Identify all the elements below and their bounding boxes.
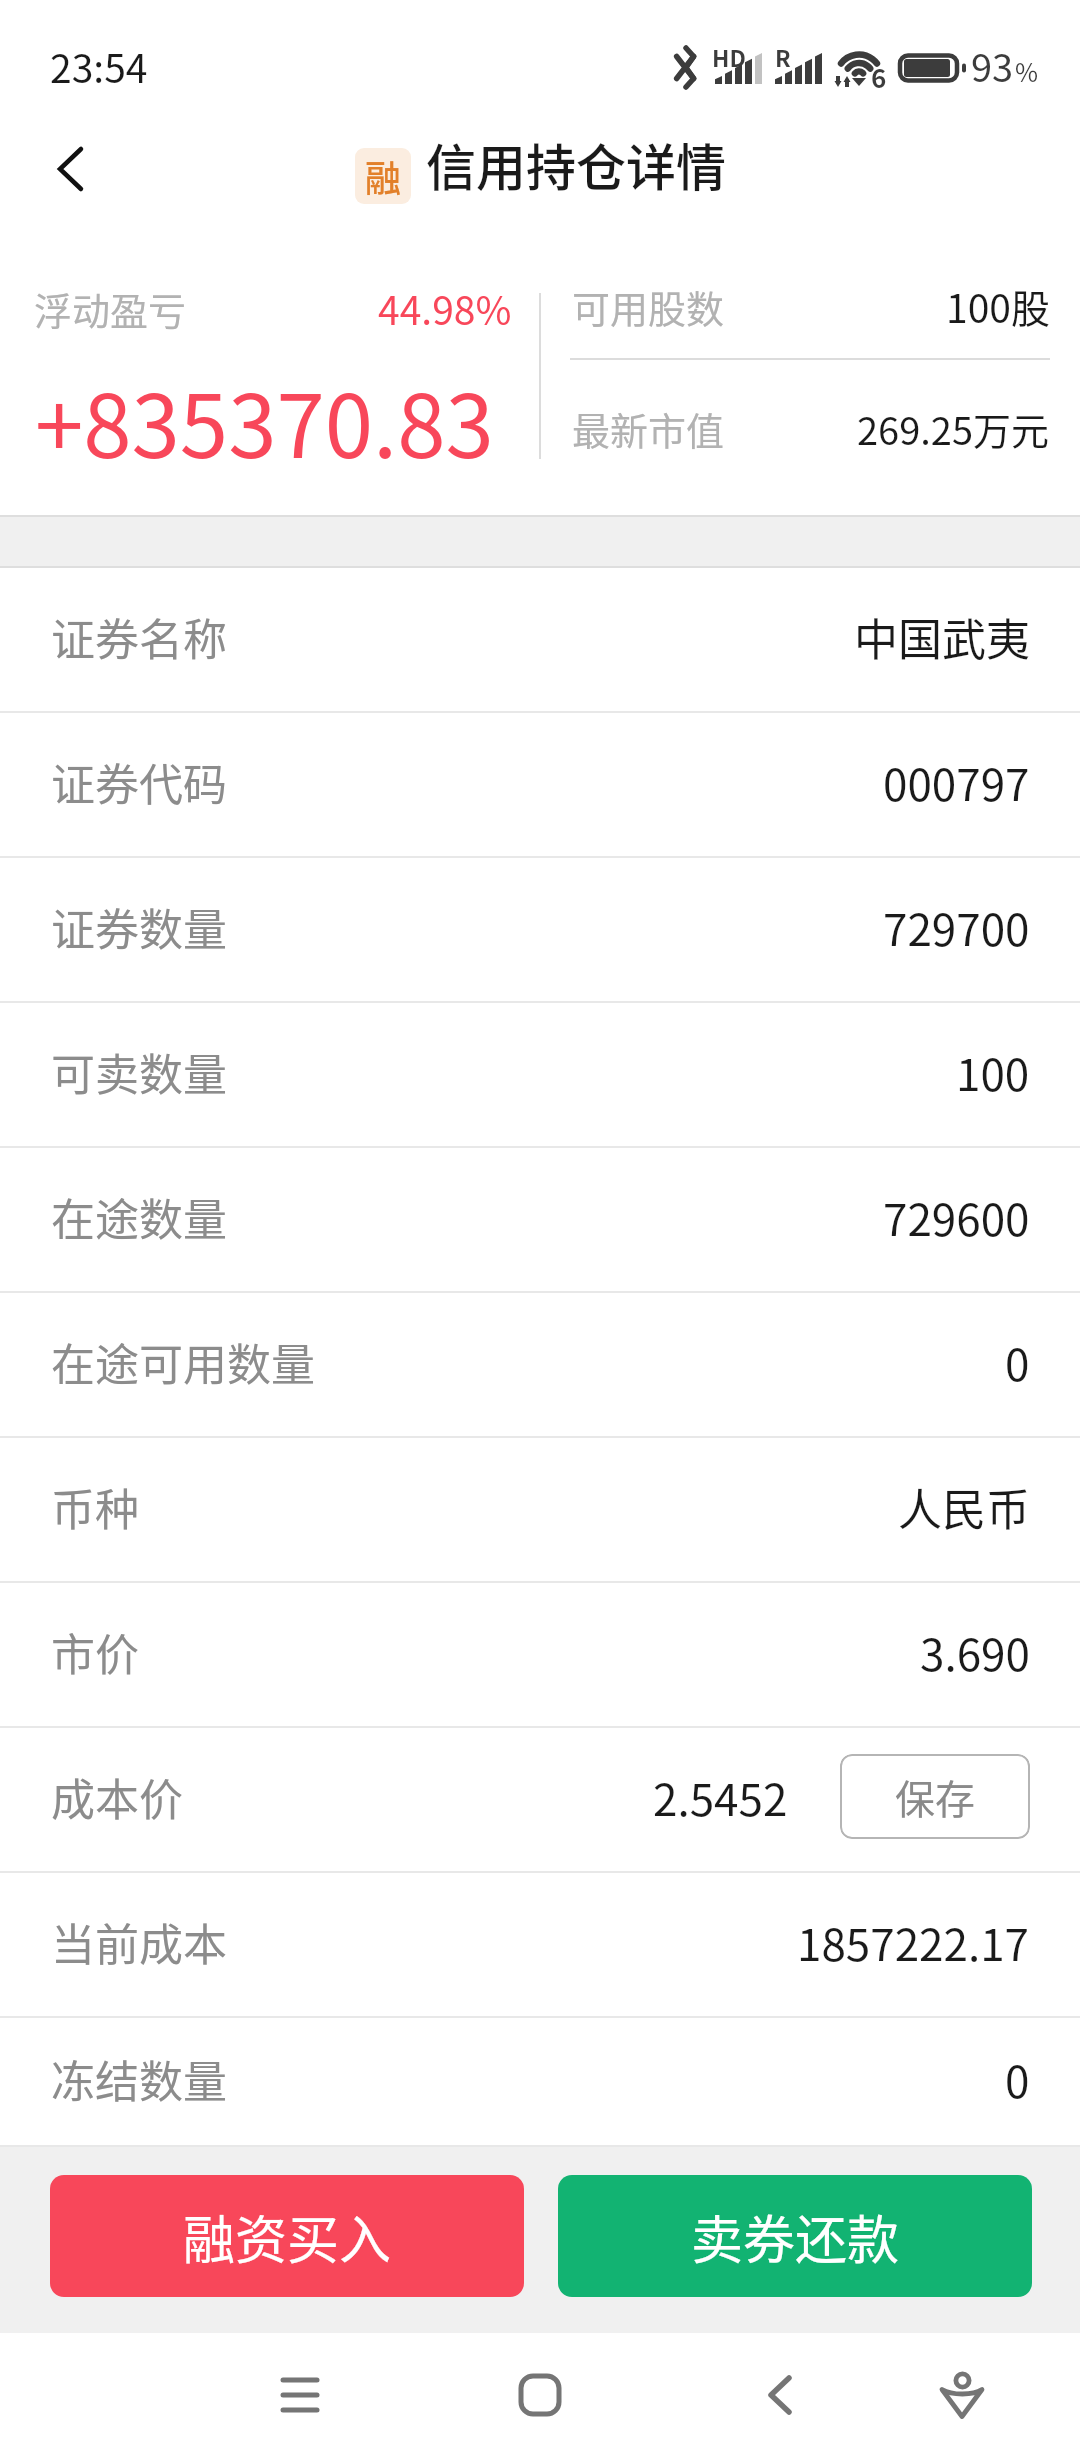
staticText: 23:54 (50, 38, 148, 94)
button[interactable]: Home (495, 2350, 585, 2440)
button[interactable]: 证券数量 (0, 858, 1080, 1003)
staticText: 可用股数 (572, 279, 725, 334)
staticText: 0 (1005, 2047, 1030, 2111)
button[interactable]: 证券代码 (0, 713, 1080, 858)
staticText: 最新市值 (572, 401, 725, 456)
staticText: HD (712, 40, 746, 73)
button[interactable]: 在途数量 (0, 1148, 1080, 1293)
staticText: 证券代码 (51, 750, 227, 814)
staticText: 信用持仓详情 (426, 128, 726, 200)
staticText: 000797 (883, 750, 1030, 814)
staticText: +835370.83 (35, 357, 494, 483)
staticText: 融 (365, 150, 402, 202)
button[interactable]: 保存 (840, 1754, 1030, 1839)
staticText: 币种 (51, 1475, 139, 1539)
staticText: 保存 (895, 1768, 975, 1826)
staticText: 729700 (883, 895, 1030, 959)
button[interactable]: 在途可用数量 (0, 1293, 1080, 1438)
staticText: 1857222.17 (797, 1910, 1030, 1974)
button[interactable]: Back (734, 2350, 824, 2440)
staticText: 人民币 (898, 1475, 1030, 1539)
staticText: 3.690 (920, 1620, 1030, 1684)
button[interactable]: 可卖数量 (0, 1003, 1080, 1148)
staticText: 0 (1005, 1330, 1030, 1394)
staticText: 可卖数量 (51, 1040, 227, 1104)
staticText: 93 (971, 38, 1014, 93)
button[interactable]: 市价 (0, 1583, 1080, 1728)
staticText: 证券名称 (51, 605, 227, 669)
staticText: 融资买入 (183, 2199, 392, 2274)
staticText: 在途可用数量 (51, 1330, 315, 1394)
staticText: 44.98% (378, 280, 512, 336)
staticText: 100 (956, 1040, 1030, 1104)
staticText: 269.25万元 (857, 401, 1050, 456)
staticText: 浮动盈亏 (34, 281, 187, 336)
staticText: 证券数量 (51, 895, 227, 959)
button[interactable]: Assistant (916, 2350, 1006, 2440)
staticText: 卖券还款 (691, 2199, 900, 2274)
staticText: R (775, 40, 791, 73)
staticText: % (1015, 53, 1039, 89)
button[interactable]: 冻结数量 (0, 2018, 1080, 2147)
staticText: 市价 (51, 1620, 139, 1684)
button[interactable]: 证券名称 (0, 568, 1080, 713)
button[interactable]: 融资买入 (50, 2175, 524, 2297)
staticText: 成本价 (51, 1765, 183, 1829)
staticText: 2.5452 (653, 1765, 788, 1829)
staticText: 当前成本 (51, 1910, 227, 1974)
staticText: 6 (871, 58, 887, 96)
button[interactable]: Menu (255, 2350, 345, 2440)
staticText: 729600 (883, 1185, 1030, 1249)
button[interactable]: 成本价 (0, 1728, 1080, 1873)
button[interactable]: 当前成本 (0, 1873, 1080, 2018)
staticText: 在途数量 (51, 1185, 227, 1249)
staticText: 冻结数量 (51, 2047, 227, 2111)
staticText: 中国武夷 (854, 605, 1030, 669)
button[interactable]: 币种 (0, 1438, 1080, 1583)
staticText: 100股 (946, 278, 1050, 334)
button[interactable]: Back (4, 124, 94, 214)
button[interactable]: 卖券还款 (558, 2175, 1032, 2297)
